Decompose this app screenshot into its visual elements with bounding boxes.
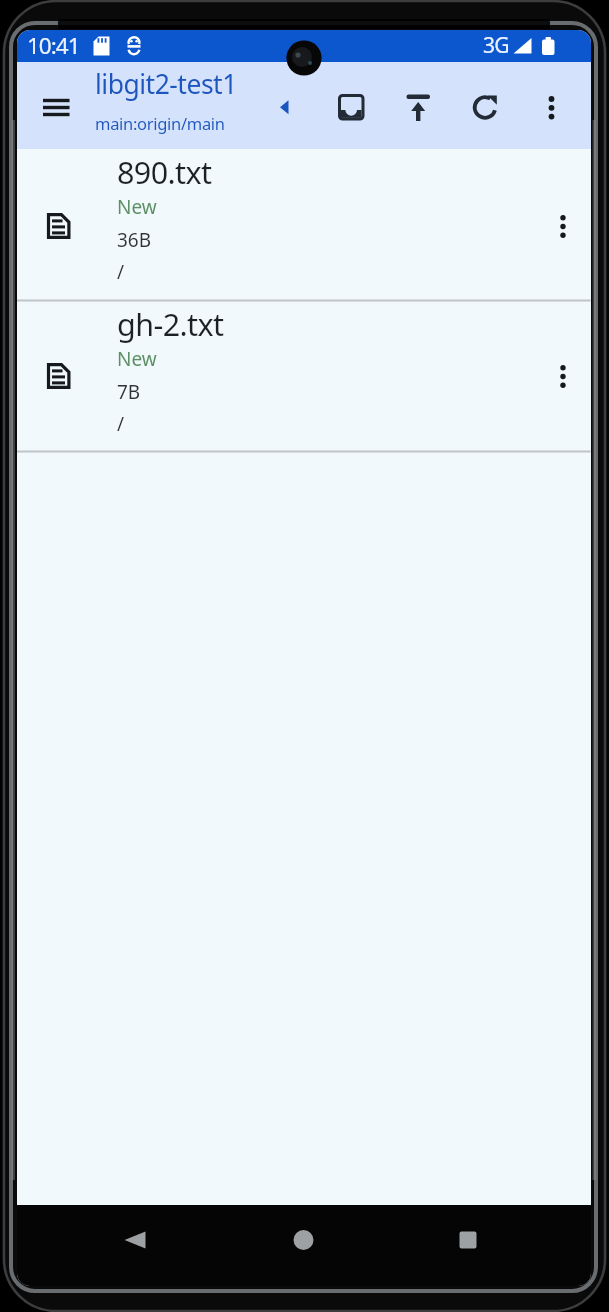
button[interactable] (529, 85, 575, 131)
staticText: libgit2-test1 (95, 66, 237, 102)
staticText: / (117, 411, 125, 437)
staticText: 3G (483, 31, 509, 60)
staticText: 890.txt (117, 151, 212, 193)
button[interactable] (462, 85, 508, 131)
staticText: New (117, 346, 157, 372)
button[interactable] (107, 1214, 163, 1266)
button[interactable] (17, 301, 591, 453)
button[interactable] (541, 346, 585, 408)
button[interactable] (17, 62, 591, 149)
button[interactable] (275, 1214, 331, 1266)
button[interactable] (327, 85, 373, 131)
button[interactable] (395, 85, 441, 131)
staticText: 36B (117, 227, 152, 253)
staticText: gh-2.txt (117, 303, 224, 345)
button[interactable] (440, 1214, 496, 1266)
staticText: 7B (117, 379, 141, 405)
button[interactable] (541, 196, 585, 258)
button[interactable] (31, 86, 81, 130)
staticText: 10:41 (27, 30, 80, 61)
staticText: main:origin/main (95, 112, 225, 134)
staticText: / (117, 259, 125, 285)
button[interactable] (17, 149, 591, 301)
staticText: New (117, 194, 157, 220)
